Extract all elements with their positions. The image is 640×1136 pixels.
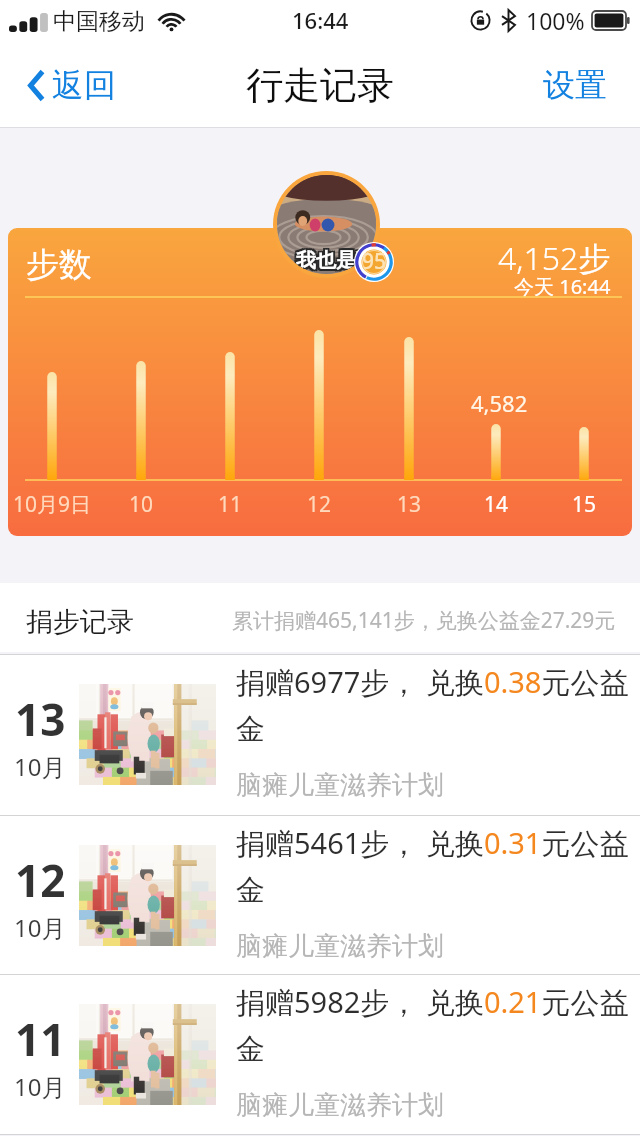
staticText: 13: [15, 689, 66, 749]
staticText: 脑瘫儿童滋养计划: [236, 930, 444, 963]
staticText: 4,582: [471, 388, 528, 418]
staticText: 捐步记录: [26, 605, 134, 639]
staticText: 脑瘫儿童滋养计划: [236, 1089, 444, 1122]
staticText: 10月9日: [8, 490, 102, 519]
staticText: 11: [15, 1009, 66, 1069]
staticText: 16:44: [292, 5, 349, 35]
button[interactable]: 返回: [0, 55, 132, 115]
staticText: 脑瘫儿童滋养计划: [236, 769, 444, 802]
staticText: 我也是醉了: [298, 248, 376, 273]
button[interactable]: 步数: [8, 228, 632, 536]
staticText: 15: [534, 490, 632, 519]
staticText: 我也是醉了: [294, 248, 376, 273]
staticText: 10: [91, 490, 191, 519]
button[interactable]: 12: [0, 816, 640, 976]
staticText: 步数: [26, 244, 92, 286]
button[interactable]: 13: [0, 655, 640, 815]
button[interactable]: User avatar: [273, 171, 380, 278]
staticText: 行走记录: [246, 62, 394, 109]
staticText: 累计捐赠465,141步，兑换公益金27.29元: [232, 606, 616, 635]
staticText: 中国移动: [53, 7, 145, 36]
staticText: 捐赠5461步， 兑换0.31元公益金: [236, 823, 636, 909]
staticText: 100%: [526, 5, 585, 36]
staticText: 10月: [14, 750, 66, 783]
staticText: 12: [269, 490, 369, 519]
staticText: 返回: [52, 65, 116, 105]
staticText: 我也是醉了: [298, 246, 376, 271]
staticText: 我也是醉了: [296, 246, 376, 271]
button[interactable]: 设置: [519, 53, 640, 117]
staticText: 我也是醉了: [294, 250, 376, 274]
staticText: 捐赠6977步， 兑换0.38元公益金: [236, 662, 636, 748]
staticText: 我也是醉了: [296, 248, 376, 273]
staticText: 14: [446, 490, 546, 519]
button[interactable]: 11: [0, 975, 640, 1135]
staticText: 捐赠5982步， 兑换0.21元公益金: [236, 982, 636, 1068]
staticText: 我也是醉了: [296, 250, 376, 274]
staticText: 10月: [14, 911, 66, 944]
staticText: 我也是醉了: [298, 250, 376, 274]
staticText: 我也是醉了: [294, 246, 376, 271]
staticText: 12: [15, 850, 66, 910]
staticText: 今天 16:44: [514, 273, 611, 300]
staticText: 4,152步: [498, 236, 611, 280]
staticText: 95: [362, 247, 387, 276]
staticText: 10月: [14, 1070, 66, 1103]
staticText: 13: [359, 490, 459, 519]
staticText: 11: [180, 490, 280, 519]
